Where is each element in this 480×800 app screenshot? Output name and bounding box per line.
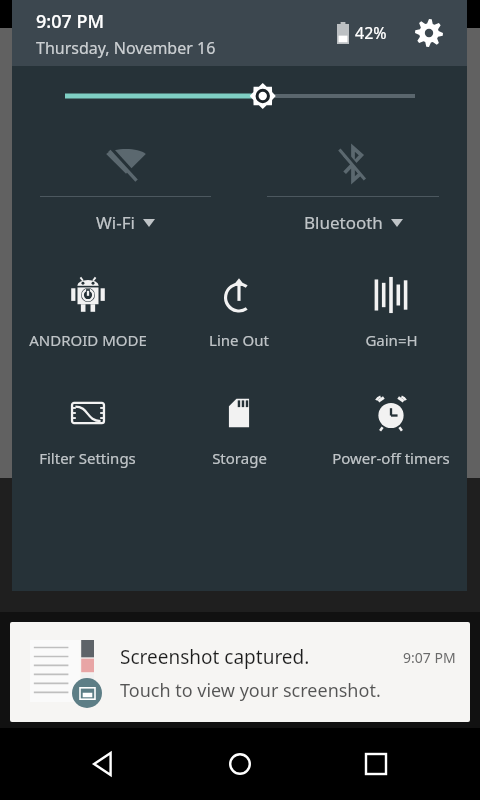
staticText: Bluetooth bbox=[304, 211, 383, 234]
staticText: Screenshot captured. bbox=[120, 644, 310, 670]
button[interactable]: Settings bbox=[409, 13, 449, 53]
staticText: Wi-Fi bbox=[96, 211, 135, 234]
button[interactable]: Power off timers bbox=[315, 392, 467, 468]
button[interactable]: Back bbox=[72, 732, 136, 796]
staticText: Gain=H bbox=[365, 330, 418, 350]
button[interactable]: Line out bbox=[163, 274, 315, 350]
button[interactable]: Gain bbox=[315, 274, 467, 350]
staticText: Touch to view your screenshot. bbox=[120, 678, 381, 703]
staticText: Line Out bbox=[209, 330, 269, 350]
button[interactable]: Bluetooth bbox=[239, 126, 467, 256]
staticText: 9:07 PM bbox=[403, 648, 456, 667]
button[interactable]: Android mode bbox=[12, 274, 163, 350]
staticText: Filter Settings bbox=[39, 448, 136, 468]
staticText: Power-off timers bbox=[332, 448, 450, 468]
button[interactable]: Recents bbox=[344, 732, 408, 796]
staticText: Storage bbox=[212, 448, 267, 468]
staticText: ANDROID MODE bbox=[29, 330, 147, 350]
button[interactable]: Home bbox=[208, 732, 272, 796]
button[interactable]: Wi-Fi bbox=[12, 126, 239, 256]
button[interactable]: Storage bbox=[163, 392, 315, 468]
button[interactable]: Brightness bbox=[12, 66, 467, 126]
staticText: 9:07 PM bbox=[36, 9, 104, 34]
button[interactable]: Screenshot captured. bbox=[10, 622, 470, 722]
button[interactable]: Filter settings bbox=[12, 392, 163, 468]
staticText: 42% bbox=[355, 22, 387, 44]
staticText: Thursday, November 16 bbox=[36, 37, 216, 59]
